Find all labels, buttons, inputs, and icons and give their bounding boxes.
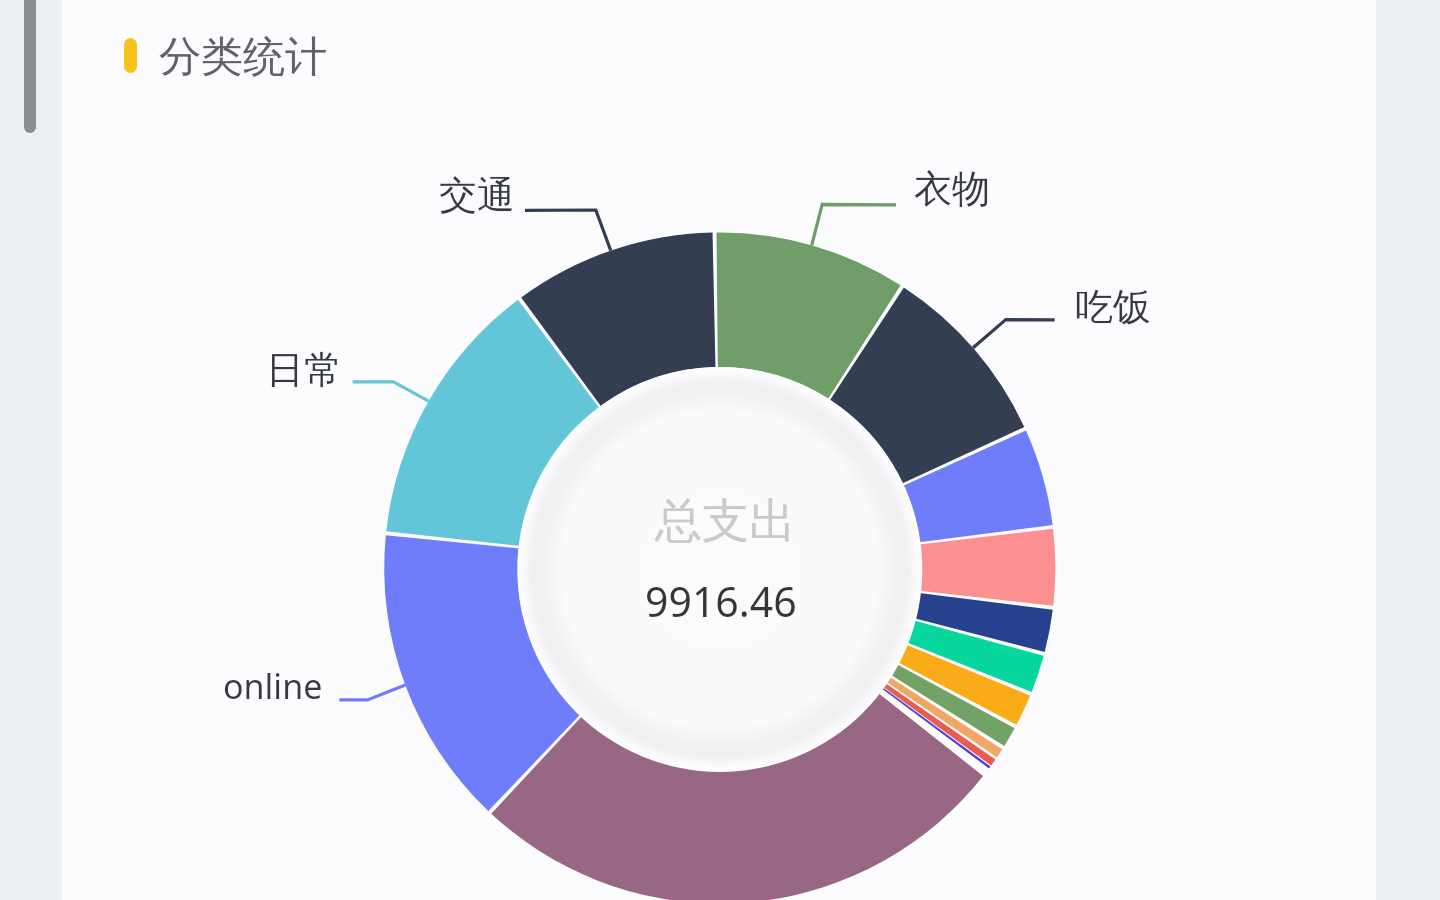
staticText: online (223, 663, 323, 709)
staticText: 衣物 (914, 165, 990, 213)
button[interactable]: 衣物 (910, 161, 988, 215)
button[interactable]: online (219, 659, 325, 709)
button[interactable]: 日常 (262, 342, 340, 396)
staticText: 交通 (439, 171, 515, 219)
button[interactable]: Expense breakdown donut chart (384, 232, 1055, 900)
staticText: 分类统计 (159, 31, 327, 84)
staticText: 9916.46 (645, 573, 797, 629)
other: Scroll position (24, 0, 36, 133)
button[interactable] (112, 18, 352, 94)
staticText: 吃饭 (1075, 283, 1151, 331)
staticText: 总支出 (655, 492, 796, 551)
button[interactable]: 交通 (435, 167, 513, 221)
staticText: 日常 (266, 346, 342, 394)
button[interactable]: 吃饭 (1071, 279, 1149, 333)
